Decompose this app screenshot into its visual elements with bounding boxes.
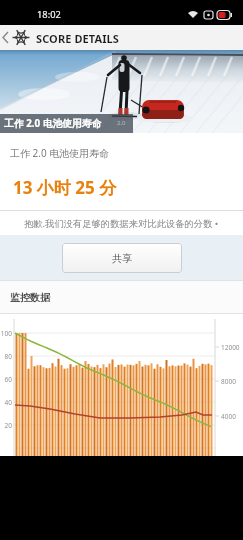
staticText: 80 bbox=[0, 352, 12, 361]
staticText: SCORE DETAILS bbox=[36, 31, 120, 46]
staticText: 13 小时 25 分 bbox=[13, 176, 117, 199]
staticText: 100 bbox=[0, 329, 12, 338]
staticText: 40 bbox=[0, 398, 12, 407]
button[interactable]: 共享 bbox=[62, 243, 182, 273]
staticText: 12000 bbox=[221, 343, 240, 352]
staticText: 60 bbox=[0, 375, 12, 384]
staticText: 8000 bbox=[221, 377, 236, 386]
button[interactable] bbox=[0, 25, 34, 50]
staticText: 18:02 bbox=[37, 8, 61, 21]
staticText: 共享 bbox=[112, 252, 132, 265]
staticText: 工作 2.0 电池使用寿命 bbox=[4, 117, 102, 130]
staticText: 4000 bbox=[221, 412, 236, 421]
staticText: 监控数据 bbox=[10, 291, 50, 304]
staticText: 2.0 bbox=[117, 119, 126, 127]
staticText: 抱歉.我们没有足够的数据来对比此设备的分数 • bbox=[24, 217, 219, 230]
button[interactable]: 工作 2.0 电池使用寿命 bbox=[0, 50, 243, 133]
staticText: 20 bbox=[0, 421, 12, 430]
staticText: 工作 2.0 电池使用寿命 bbox=[10, 146, 110, 160]
